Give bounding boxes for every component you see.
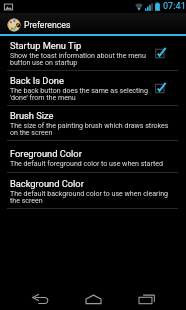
staticText: Preferences <box>24 20 71 30</box>
button[interactable]: Back Is Done <box>0 71 186 106</box>
staticText: Background Color <box>10 178 84 189</box>
staticText: Back Is Done <box>10 75 64 86</box>
button[interactable]: Brush Size <box>0 106 186 141</box>
staticText: Brush Size <box>10 110 54 121</box>
button[interactable]: Foreground Color <box>0 141 186 173</box>
button[interactable]: Back <box>28 288 52 310</box>
button[interactable]: Startup Menu Tip <box>0 36 186 71</box>
staticText: The size of the painting brush which dra… <box>10 121 174 137</box>
staticText: Show the toast information about the men… <box>10 51 151 67</box>
staticText: The back button does the same as selecti… <box>10 86 151 102</box>
button[interactable]: Background Color <box>0 173 186 209</box>
staticText: The default background color to use when… <box>10 189 174 205</box>
staticText: Startup Menu Tip <box>10 40 82 51</box>
staticText: The default foreground color to use when… <box>10 159 164 167</box>
button[interactable]: Home <box>81 288 105 310</box>
button[interactable]: Recent apps <box>134 288 158 310</box>
staticText: Foreground Color <box>10 148 82 159</box>
staticText: 07:41 <box>163 1 186 12</box>
